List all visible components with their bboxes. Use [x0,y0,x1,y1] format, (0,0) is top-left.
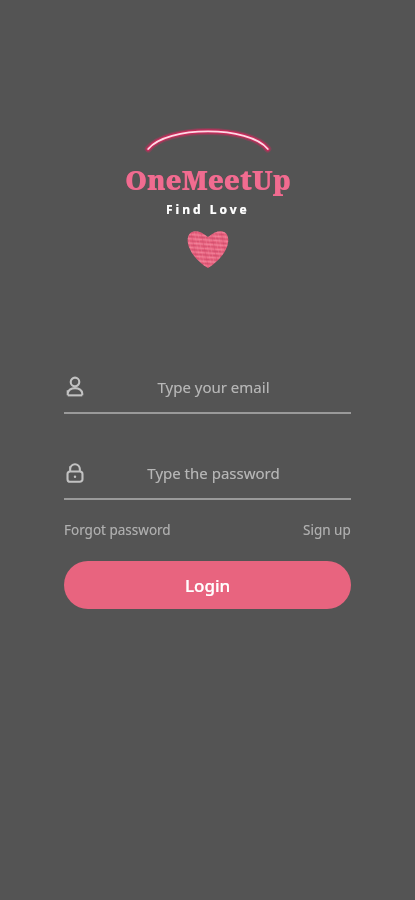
staticText: OneMeetUp [125,161,291,198]
button[interactable]: Email [64,376,351,398]
button[interactable]: Forgot password [64,518,171,542]
staticText: Type the password [147,463,280,483]
other: Email [64,376,86,398]
staticText: Login [185,574,231,597]
staticText: OneMeetUp [125,161,291,198]
button[interactable]: Login [64,561,351,609]
staticText: Forgot password [64,521,171,539]
staticText: Type your email [157,377,270,397]
staticText: Find Love [166,201,250,217]
staticText: Sign up [303,521,351,539]
button[interactable]: Sign up [303,518,351,542]
other: Password [64,462,86,484]
button[interactable]: Password [64,462,351,484]
